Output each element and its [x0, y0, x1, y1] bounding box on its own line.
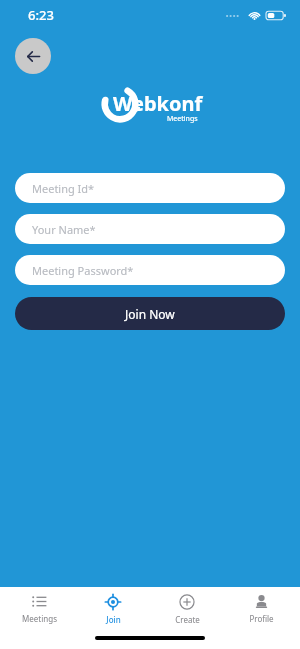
staticText: 6:23: [28, 6, 54, 24]
staticText: Profile: [249, 613, 274, 624]
button[interactable]: Your Name*: [15, 214, 285, 244]
staticText: Meetings: [22, 613, 57, 624]
button[interactable]: Meetings: [4, 592, 74, 624]
staticText: Join: [106, 614, 121, 625]
staticText: Webkonf: [113, 90, 203, 117]
staticText: Join Now: [125, 306, 175, 322]
staticText: Your Name*: [32, 222, 96, 237]
staticText: Meeting Password*: [32, 263, 134, 278]
button[interactable]: Profile: [226, 592, 296, 624]
staticText: Meetings: [167, 114, 198, 124]
button[interactable]: Meeting Password*: [15, 255, 285, 285]
button[interactable]: Join Now: [15, 297, 285, 330]
button[interactable]: Back: [15, 38, 51, 74]
staticText: Create: [175, 614, 200, 625]
button[interactable]: Join: [78, 592, 148, 625]
staticText: Meeting Id*: [32, 181, 95, 196]
button[interactable]: Meeting Id*: [15, 173, 285, 203]
button[interactable]: Create: [152, 592, 222, 625]
